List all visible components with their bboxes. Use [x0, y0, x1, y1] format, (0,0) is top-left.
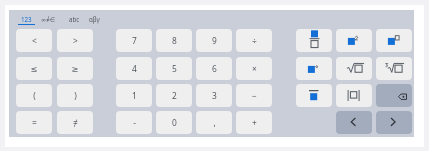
button[interactable]: , — [196, 111, 232, 134]
button[interactable]: ÷ — [236, 29, 272, 52]
staticText: 3 — [212, 90, 217, 101]
button[interactable]: ≥ — [57, 57, 93, 80]
staticText: 7 — [132, 35, 137, 46]
staticText: 1 — [132, 90, 137, 101]
staticText: 6 — [212, 63, 217, 74]
button[interactable]: − — [236, 84, 272, 107]
button[interactable]: 2 — [156, 84, 192, 107]
staticText: + — [252, 117, 257, 128]
button[interactable]: 3 — [196, 84, 232, 107]
button[interactable]: × — [236, 57, 272, 80]
button[interactable]: Degree — [296, 57, 332, 80]
button[interactable]: ∞≠∈ — [39, 13, 57, 25]
button[interactable]: Move left — [336, 111, 372, 134]
button[interactable]: Fraction — [296, 29, 332, 52]
staticText: 2 — [172, 90, 177, 101]
button[interactable]: = — [16, 111, 52, 134]
button[interactable]: ≠ — [57, 111, 93, 134]
staticText: abc — [69, 15, 80, 23]
button[interactable]: 7 — [116, 29, 152, 52]
button[interactable]: < — [16, 29, 52, 52]
button[interactable]: 5 — [156, 57, 192, 80]
staticText: - — [133, 117, 136, 128]
staticText: ≥ — [71, 64, 79, 74]
button[interactable]: - — [116, 111, 152, 134]
staticText: ( — [33, 90, 36, 101]
button[interactable]: Square root — [336, 57, 372, 80]
staticText: ≠ — [73, 117, 78, 128]
button[interactable]: 1 — [116, 84, 152, 107]
staticText: ÷ — [252, 35, 257, 46]
staticText: 4 — [132, 63, 137, 74]
button[interactable]: 9 — [196, 29, 232, 52]
staticText: 5 — [172, 63, 177, 74]
button[interactable]: > — [57, 29, 93, 52]
button[interactable]: ( — [16, 84, 52, 107]
staticText: × — [252, 63, 257, 74]
button[interactable]: Move right — [376, 111, 412, 134]
button[interactable]: 0 — [156, 111, 192, 134]
button[interactable]: Backspace — [376, 84, 412, 107]
staticText: 123 — [21, 15, 32, 23]
button[interactable]: ) — [57, 84, 93, 107]
staticText: ∞≠∈ — [41, 15, 56, 23]
staticText: , — [213, 117, 216, 128]
staticText: < — [32, 35, 37, 46]
button[interactable]: 123 — [19, 13, 34, 25]
staticText: > — [73, 35, 78, 46]
button[interactable]: abc — [67, 13, 82, 25]
staticText: αβγ — [89, 15, 100, 23]
button[interactable]: Nth root — [376, 57, 412, 80]
staticText: 0 — [172, 117, 177, 128]
button[interactable]: Absolute value — [336, 84, 372, 107]
staticText: ≤ — [30, 64, 38, 74]
button[interactable]: 6 — [196, 57, 232, 80]
button[interactable]: 4 — [116, 57, 152, 80]
staticText: ) — [74, 90, 77, 101]
button[interactable]: αβγ — [86, 13, 102, 25]
button[interactable]: ≤ — [16, 57, 52, 80]
button[interactable]: 8 — [156, 29, 192, 52]
staticText: = — [32, 117, 37, 128]
staticText: 9 — [212, 35, 217, 46]
staticText: − — [252, 90, 257, 101]
button[interactable]: Repeating decimal — [296, 84, 332, 107]
staticText: 8 — [172, 35, 177, 46]
button[interactable]: Power — [376, 29, 412, 52]
button[interactable]: + — [236, 111, 272, 134]
button[interactable]: Square — [336, 29, 372, 52]
